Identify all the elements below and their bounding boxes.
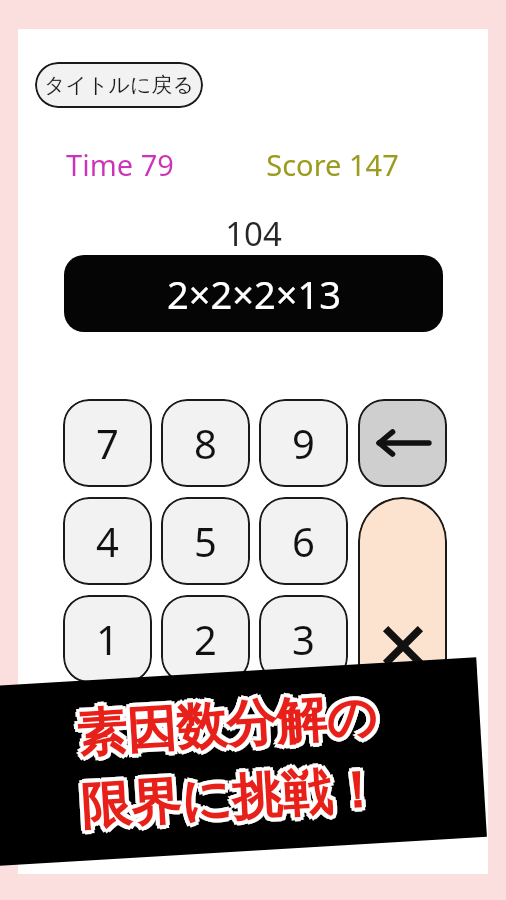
staticText: 限界に挑戦！ — [81, 755, 387, 836]
staticText: 素因数分解の — [74, 681, 379, 762]
button[interactable]: 6 — [259, 497, 348, 585]
button[interactable]: Multiply — [358, 497, 447, 683]
staticText: 2 — [194, 612, 217, 666]
staticText: 限界に挑戦！ — [80, 756, 386, 837]
staticText: 限界に挑戦！ — [76, 761, 381, 842]
staticText: 素因数分解の — [71, 682, 376, 763]
staticText: 2×2×2×13 — [167, 268, 341, 320]
staticText: 限界に挑戦！ — [75, 758, 380, 839]
staticText: 素因数分解の — [76, 683, 381, 764]
button[interactable]: 3 — [259, 595, 348, 683]
staticText: 限界に挑戦！ — [82, 761, 387, 842]
staticText: Score 147 — [266, 145, 399, 184]
staticText: 104 — [225, 211, 282, 256]
staticText: 限界に挑戦！ — [76, 756, 382, 837]
button[interactable]: 7 — [63, 399, 152, 487]
staticText: 5 — [194, 514, 217, 568]
staticText: 限界に挑戦！ — [77, 760, 382, 841]
staticText: 8 — [194, 416, 217, 470]
button[interactable]: 2 — [161, 595, 250, 683]
staticText: 素因数分解の — [76, 687, 381, 768]
staticText: 素因数分解の — [77, 688, 383, 769]
staticText: 限界に挑戦！ — [79, 762, 384, 843]
staticText: 素因数分解の — [70, 685, 375, 766]
staticText: 限界に挑戦！ — [75, 755, 381, 836]
button[interactable]: 8 — [161, 399, 250, 487]
button[interactable]: 5 — [161, 497, 250, 585]
staticText: Time 79 — [66, 145, 174, 184]
staticText: 限界に挑戦！ — [81, 760, 386, 841]
staticText: 素因数分解の — [71, 688, 377, 769]
staticText: 素因数分解の — [74, 689, 380, 770]
staticText: 9 — [292, 416, 315, 470]
staticText: 素因数分解の — [72, 687, 378, 768]
button[interactable]: 1 — [63, 595, 152, 683]
staticText: 6 — [292, 514, 315, 568]
staticText: 素因数分解の — [78, 685, 383, 766]
staticText: 4 — [96, 514, 119, 568]
staticText: 1 — [96, 612, 119, 666]
staticText: 素因数分解の — [77, 682, 382, 763]
staticText: 限界に挑戦！ — [83, 758, 388, 839]
staticText: 7 — [96, 416, 119, 470]
staticText: タイトルに戻る — [44, 72, 194, 98]
staticText: 3 — [292, 612, 315, 666]
button[interactable]: 9 — [259, 399, 348, 487]
button[interactable]: タイトルに戻る — [35, 62, 203, 108]
button[interactable]: Backspace — [358, 399, 447, 487]
staticText: 限界に挑戦！ — [78, 754, 383, 835]
button[interactable]: 4 — [63, 497, 152, 585]
staticText: 素因数分解の — [72, 683, 377, 764]
staticText: 限界に挑戦！ — [79, 758, 384, 839]
staticText: 素因数分解の — [74, 685, 379, 766]
